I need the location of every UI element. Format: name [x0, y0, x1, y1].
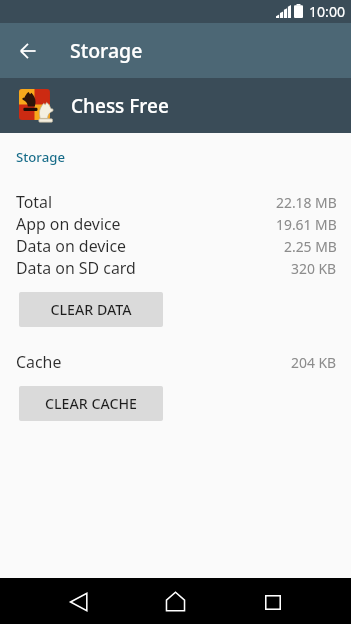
- staticText: CLEAR CACHE: [45, 394, 137, 413]
- staticText: Data on SD card: [16, 257, 136, 279]
- staticText: 204 KB: [291, 353, 337, 372]
- button[interactable]: CLEAR DATA: [19, 292, 163, 327]
- staticText: Storage: [70, 37, 143, 64]
- staticText: App on device: [16, 213, 121, 235]
- staticText: 10:00: [309, 2, 346, 21]
- staticText: 22.18 MB: [276, 193, 337, 212]
- button[interactable]: Recent apps: [250, 579, 296, 624]
- staticText: Chess Free: [71, 93, 169, 119]
- staticText: Cache: [16, 351, 62, 373]
- button[interactable]: CLEAR CACHE: [19, 386, 163, 421]
- button[interactable]: Back: [9, 32, 46, 69]
- button[interactable]: Home: [152, 578, 198, 624]
- button[interactable]: Back: [47, 579, 93, 624]
- staticText: Storage: [16, 148, 65, 166]
- staticText: Data on device: [16, 235, 127, 257]
- staticText: 2.25 MB: [284, 237, 337, 256]
- staticText: Total: [16, 191, 53, 213]
- staticText: CLEAR DATA: [50, 300, 132, 319]
- staticText: 320 KB: [291, 259, 337, 278]
- staticText: 19.61 MB: [276, 215, 337, 234]
